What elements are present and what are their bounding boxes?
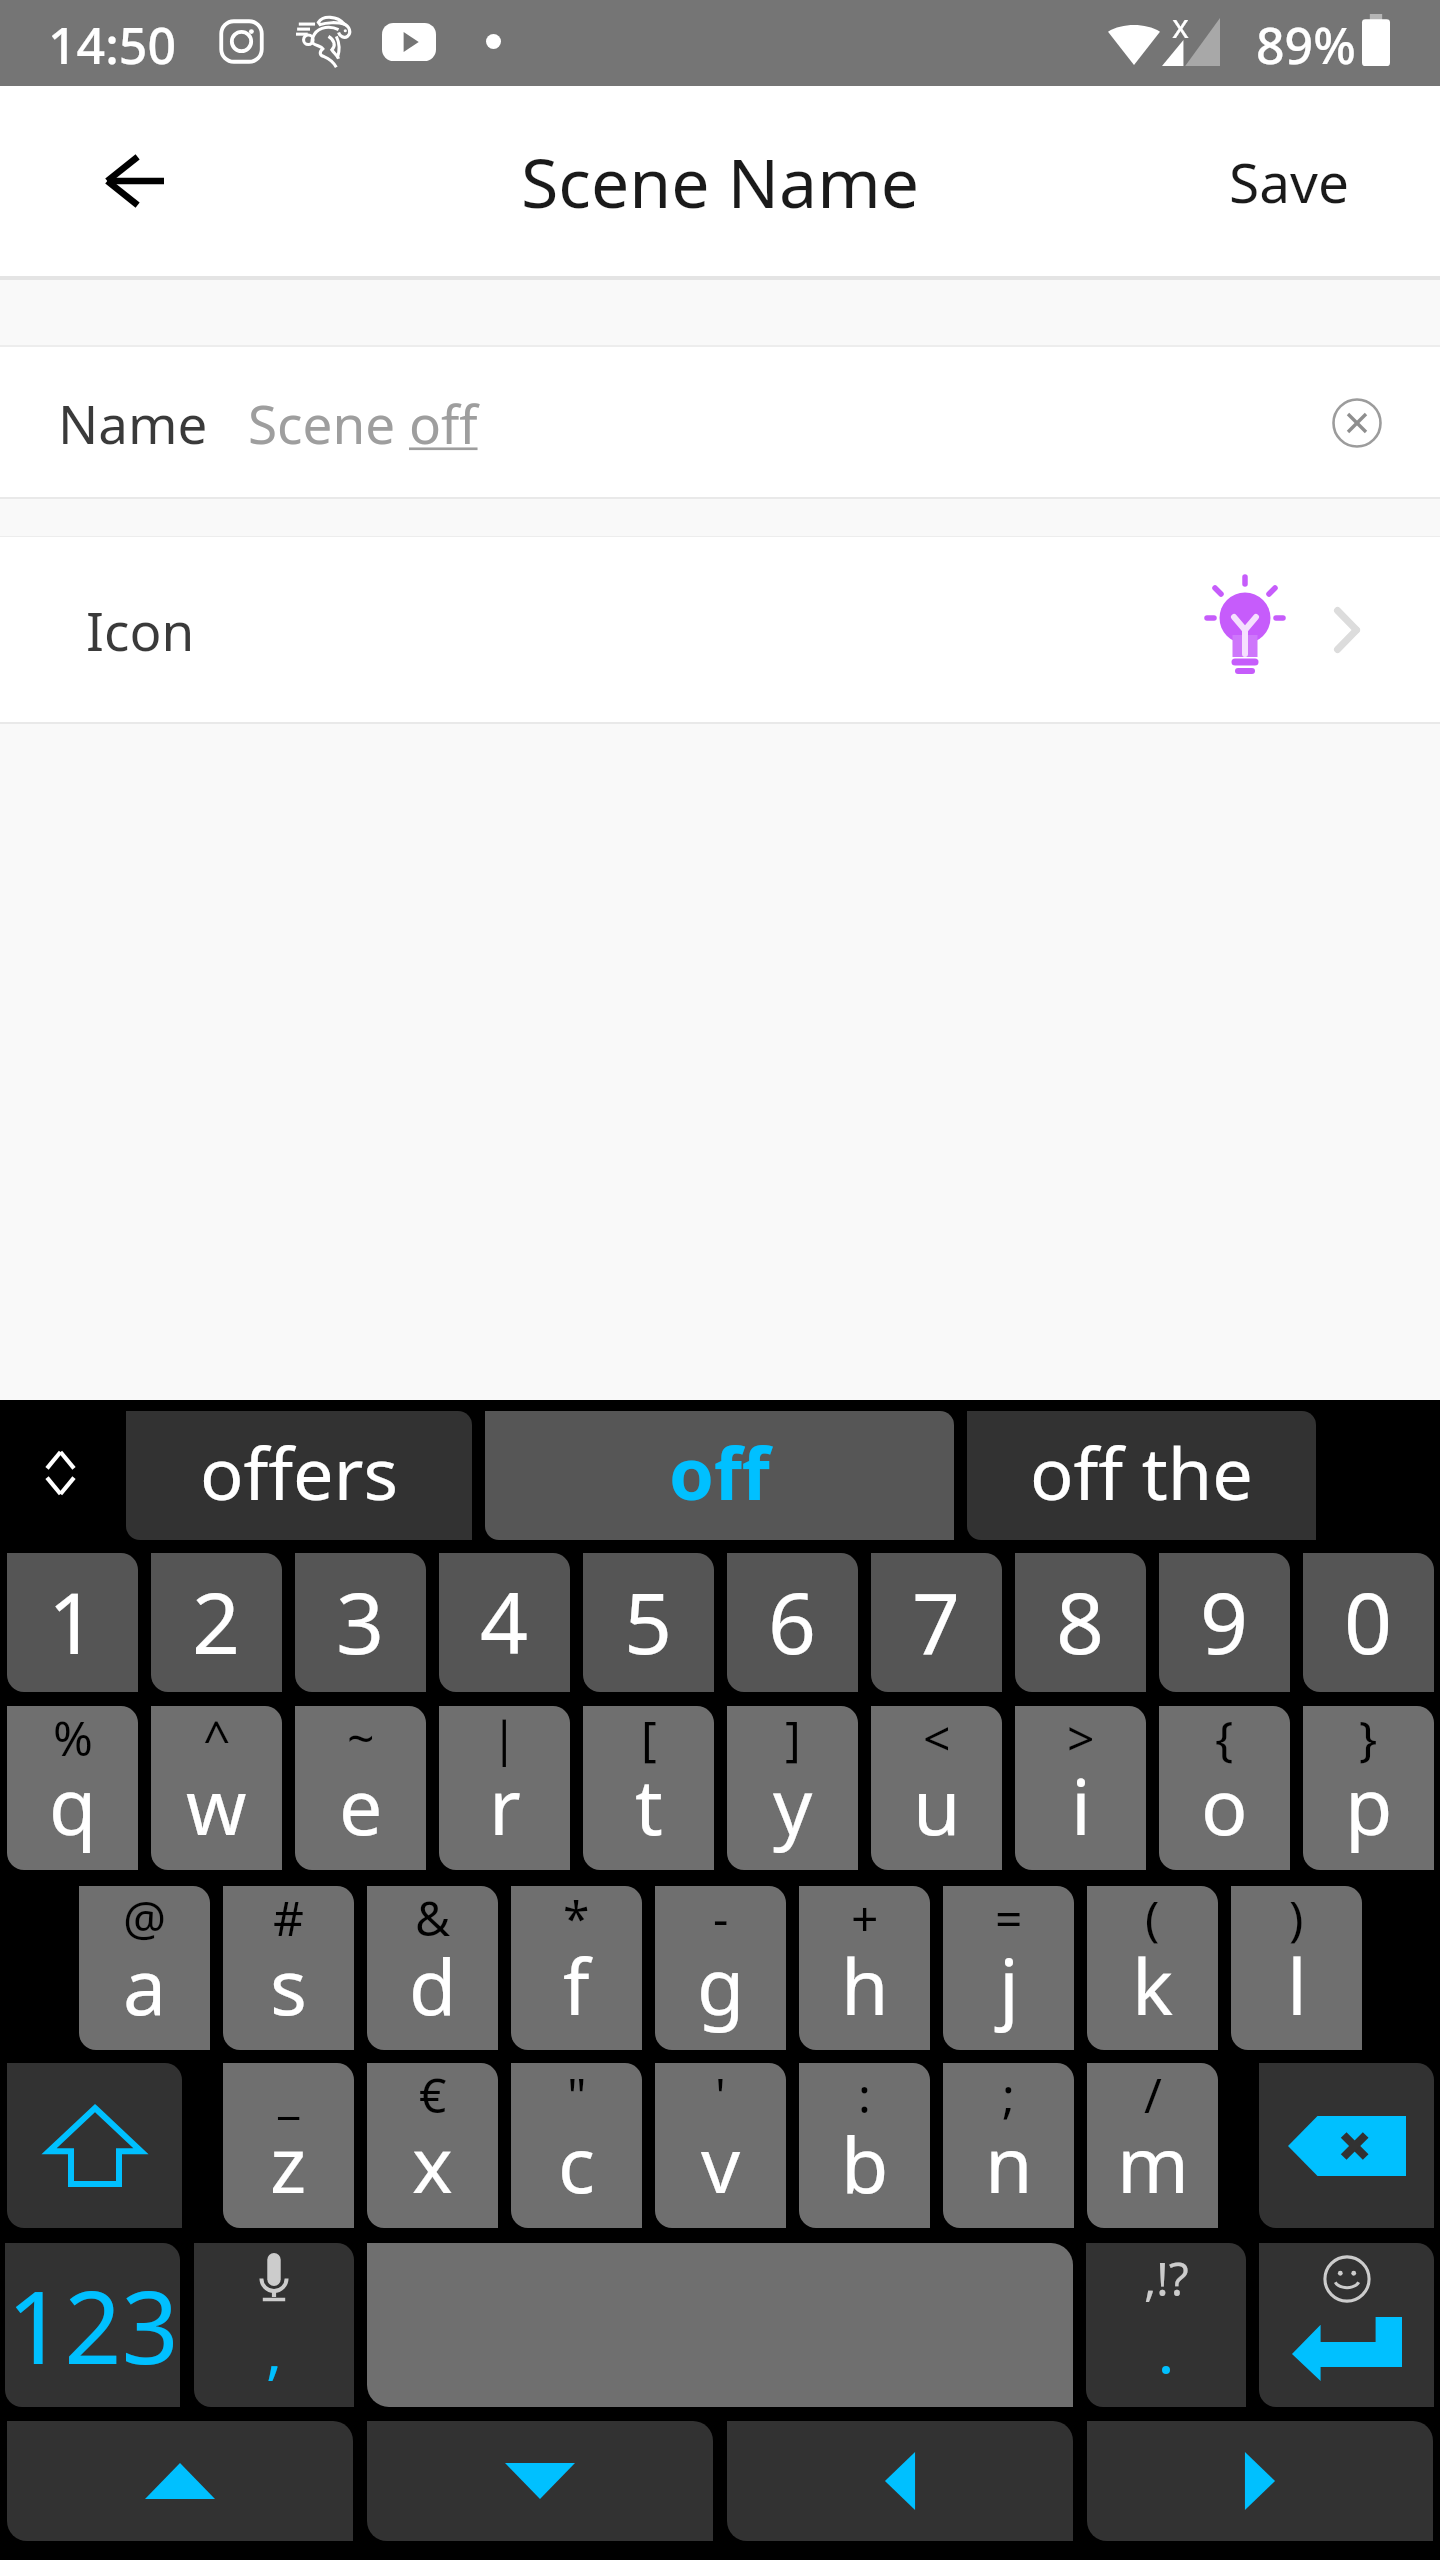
button[interactable]: Save <box>1189 116 1389 246</box>
button[interactable]: ' <box>655 2063 786 2228</box>
button[interactable]: 5 <box>583 1553 714 1692</box>
staticText: offers <box>200 1423 398 1521</box>
button[interactable]: offers <box>126 1411 472 1540</box>
staticText: ] <box>785 1706 801 1770</box>
staticText: x <box>1172 4 1189 48</box>
staticText: [ <box>641 1706 657 1770</box>
button[interactable]: Backspace <box>1259 2063 1434 2228</box>
staticText: - <box>713 1886 729 1950</box>
staticText: h <box>841 1933 889 2038</box>
staticText: 4 <box>480 1564 529 1678</box>
button[interactable]: / <box>1087 2063 1218 2228</box>
button[interactable]: [ <box>583 1706 714 1870</box>
staticText: 6 <box>768 1564 817 1678</box>
staticText: Scene <box>248 387 409 459</box>
staticText: 7 <box>912 1564 961 1678</box>
staticText: 14:50 <box>48 11 176 79</box>
staticText: i <box>1071 1753 1091 1858</box>
button[interactable]: 9 <box>1159 1553 1290 1692</box>
button[interactable]: ^ <box>151 1706 282 1870</box>
staticText: 89% <box>1256 11 1356 79</box>
staticText: o <box>1201 1753 1248 1858</box>
button[interactable]: { <box>1159 1706 1290 1870</box>
staticText: l <box>1287 1933 1307 2038</box>
button[interactable]: : <box>799 2063 930 2228</box>
staticText: 0 <box>1344 1564 1393 1678</box>
staticText: = <box>995 1886 1023 1950</box>
button[interactable]: 1 <box>7 1553 138 1692</box>
staticText: 5 <box>624 1564 673 1678</box>
button[interactable]: ) <box>1231 1886 1362 2050</box>
button[interactable]: 0 <box>1303 1553 1434 1692</box>
button[interactable]: Right <box>1087 2421 1433 2541</box>
staticText: v <box>701 2111 741 2216</box>
button[interactable]: = <box>943 1886 1074 2050</box>
staticText: w <box>186 1753 247 1858</box>
button[interactable]: _ <box>223 2063 354 2228</box>
staticText: c <box>558 2111 595 2216</box>
staticText: 2 <box>192 1564 241 1678</box>
button[interactable]: 6 <box>727 1553 858 1692</box>
button[interactable]: % <box>7 1706 138 1870</box>
button[interactable]: ; <box>943 2063 1074 2228</box>
staticText: k <box>1132 1933 1174 2038</box>
button[interactable]: 4 <box>439 1553 570 1692</box>
staticText: % <box>53 1706 93 1770</box>
staticText: d <box>409 1933 457 2038</box>
staticText: f <box>563 1933 590 2038</box>
button[interactable]: } <box>1303 1706 1434 1870</box>
staticText: > <box>1067 1706 1095 1770</box>
staticText: 3 <box>336 1564 385 1678</box>
button[interactable]: € <box>367 2063 498 2228</box>
button[interactable]: | <box>439 1706 570 1870</box>
button[interactable]: Switch to numbers <box>5 2243 180 2407</box>
button[interactable]: < <box>871 1706 1002 1870</box>
button[interactable]: 3 <box>295 1553 426 1692</box>
staticText: / <box>1144 2063 1162 2127</box>
button[interactable]: Up <box>7 2421 353 2541</box>
button[interactable]: 8 <box>1015 1553 1146 1692</box>
button[interactable]: 2 <box>151 1553 282 1692</box>
button[interactable]: ( <box>1087 1886 1218 2050</box>
button[interactable]: - <box>655 1886 786 2050</box>
staticText: e <box>339 1753 383 1858</box>
button[interactable]: off <box>485 1411 954 1540</box>
button[interactable]: & <box>367 1886 498 2050</box>
button[interactable]: Back <box>72 119 196 243</box>
button[interactable]: off the <box>967 1411 1316 1540</box>
staticText: q <box>49 1753 97 1858</box>
button[interactable]: * <box>511 1886 642 2050</box>
button[interactable]: Clear text <box>1315 381 1399 465</box>
button[interactable]: # <box>223 1886 354 2050</box>
staticText: p <box>1345 1753 1393 1858</box>
staticText: x <box>412 2111 453 2216</box>
staticText: 123 <box>7 2257 179 2393</box>
button[interactable]: Down <box>367 2421 713 2541</box>
staticText: t <box>635 1753 663 1858</box>
button[interactable]: Icon <box>0 537 1440 723</box>
button[interactable]: @ <box>79 1886 210 2050</box>
button[interactable]: ] <box>727 1706 858 1870</box>
staticText: { <box>1215 1706 1234 1770</box>
staticText: 1 <box>48 1564 97 1678</box>
button[interactable]: > <box>1015 1706 1146 1870</box>
button[interactable]: Space <box>367 2243 1073 2407</box>
staticText: n <box>985 2111 1033 2216</box>
staticText: Name <box>58 387 208 459</box>
staticText: u <box>913 1753 961 1858</box>
staticText: 9 <box>1200 1564 1249 1678</box>
button[interactable]: Punctuation <box>1086 2243 1246 2407</box>
button[interactable]: Left <box>727 2421 1073 2541</box>
button[interactable]: ~ <box>295 1706 426 1870</box>
button[interactable]: Voice input <box>194 2243 354 2407</box>
button[interactable]: Shift <box>7 2063 182 2228</box>
staticText: 8 <box>1056 1564 1105 1678</box>
staticText: b <box>841 2111 889 2216</box>
button[interactable]: + <box>799 1886 930 2050</box>
staticText: | <box>491 1706 518 1770</box>
staticText: + <box>851 1886 879 1950</box>
button[interactable]: " <box>511 2063 642 2228</box>
staticText: # <box>273 1886 305 1950</box>
button[interactable]: 7 <box>871 1553 1002 1692</box>
button[interactable]: Enter <box>1259 2243 1434 2407</box>
